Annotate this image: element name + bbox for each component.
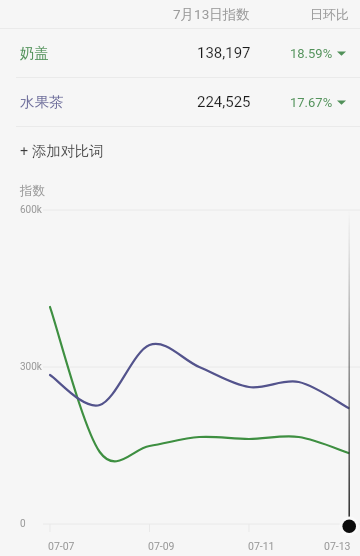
staticText: 奶盖 (20, 44, 49, 62)
staticText: 17.67% (290, 95, 333, 110)
staticText: 0 (20, 518, 26, 530)
staticText: 600k (20, 204, 42, 216)
staticText: 300k (20, 361, 42, 373)
staticText: 138,197 (197, 44, 251, 62)
staticText: 07-13 (324, 540, 351, 552)
staticText: 07-11 (248, 540, 275, 552)
staticText: 7月13日指数 (173, 6, 250, 23)
staticText: 224,525 (197, 93, 251, 111)
button[interactable]: 水果茶 (0, 78, 360, 126)
staticText: 日环比 (310, 6, 349, 22)
staticText: 水果茶 (20, 93, 64, 111)
staticText: 18.59% (290, 46, 333, 61)
staticText: 指数 (20, 183, 45, 199)
button[interactable]: 奶盖 (0, 29, 360, 77)
staticText: + 添加对比词 (20, 142, 104, 160)
staticText: 07-09 (148, 540, 175, 552)
staticText: 07-07 (48, 540, 75, 552)
button[interactable]: + 添加对比词 (0, 128, 360, 174)
